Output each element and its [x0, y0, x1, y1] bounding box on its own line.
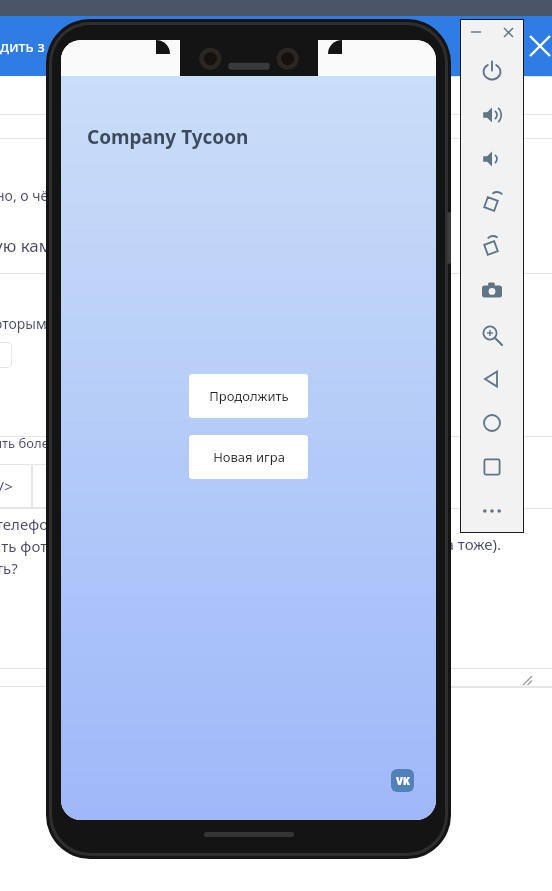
button[interactable]: Close [524, 30, 552, 62]
button[interactable]: Новая игра [189, 435, 308, 479]
button[interactable]: More [460, 489, 524, 533]
button[interactable]: Volume up [460, 93, 524, 137]
staticText: Company Tycoon [87, 124, 249, 150]
button[interactable]: Продолжить [189, 374, 308, 418]
staticText: телефо [0, 514, 49, 534]
button[interactable]: Close panel [498, 22, 518, 42]
staticText: оторым [0, 314, 47, 333]
button[interactable]: Zoom [460, 313, 524, 357]
button[interactable] [0, 342, 12, 368]
staticText: ть? [0, 558, 18, 578]
button[interactable]: Rotate left [460, 181, 524, 225]
button[interactable]: Back [460, 357, 524, 401]
staticText: ить фот [0, 536, 48, 556]
staticText: Новая игра [213, 448, 285, 466]
staticText: ую каме [0, 234, 62, 257]
staticText: едить з [0, 36, 45, 56]
button[interactable]: Home [460, 401, 524, 445]
button[interactable]: VKontakte [391, 769, 414, 792]
button[interactable]: Rotate right [460, 225, 524, 269]
button[interactable]: </> [0, 464, 32, 508]
staticText: Продолжить [209, 387, 289, 405]
staticText: VK [396, 774, 410, 788]
button[interactable]: Volume down [460, 137, 524, 181]
staticText: но, о чё [0, 186, 49, 205]
button[interactable]: Minimize [466, 22, 486, 42]
staticText: еза тоже). [430, 534, 502, 554]
button[interactable]: Screenshot [460, 269, 524, 313]
staticText: ить боле [0, 434, 49, 452]
button[interactable]: Overview [460, 445, 524, 489]
button[interactable]: Power [460, 49, 524, 93]
staticText: </> [0, 476, 13, 496]
